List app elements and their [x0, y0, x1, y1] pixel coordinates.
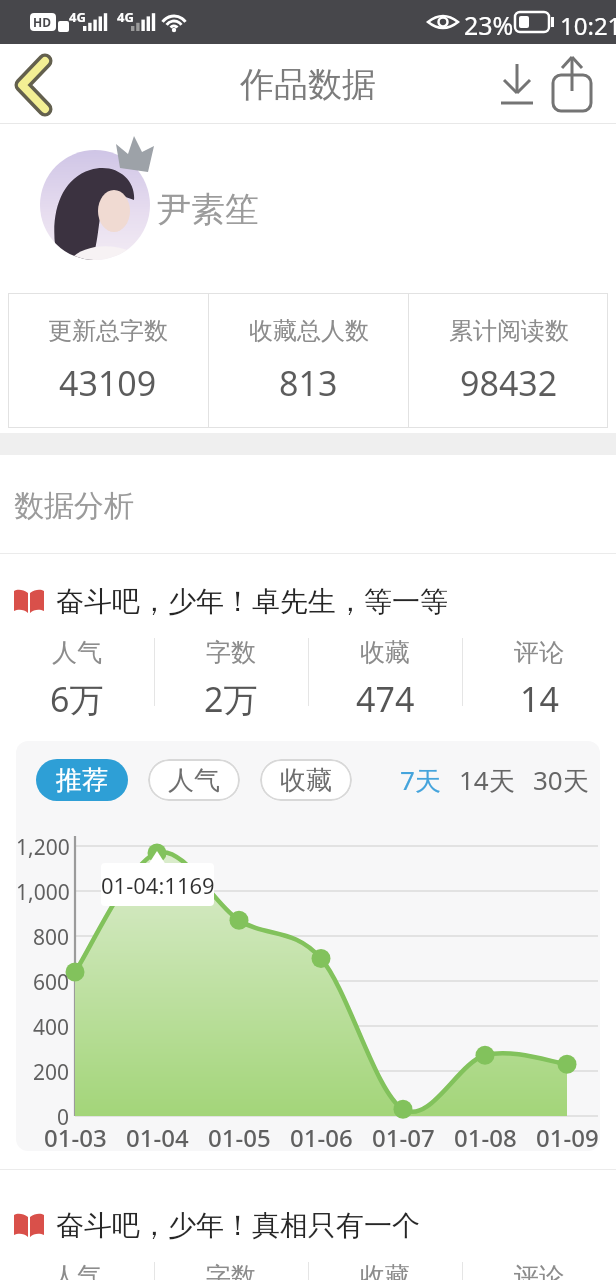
staticText: 400 — [33, 1013, 70, 1042]
staticText: 0 — [57, 1103, 70, 1132]
button[interactable]: 收藏总人数 — [209, 293, 408, 428]
staticText: 813 — [279, 360, 338, 406]
button[interactable]: 更新总字数 — [8, 293, 208, 428]
button[interactable]: 30天 — [533, 762, 589, 798]
staticText: 人气 — [168, 764, 220, 797]
button[interactable]: 奋斗吧，少年！卓先生，等一等 — [14, 584, 616, 619]
staticText: 01-03 — [44, 1121, 107, 1151]
staticText: 10:21 — [560, 9, 616, 42]
button[interactable] — [549, 55, 595, 113]
staticText: 4G — [117, 8, 134, 26]
staticText: 01-04 — [126, 1121, 189, 1151]
staticText: 01-05 — [208, 1121, 271, 1151]
staticText: 更新总字数 — [48, 316, 168, 346]
staticText: 字数 — [206, 1261, 256, 1280]
staticText: 2万 — [204, 676, 258, 722]
staticText: 01-09 — [536, 1121, 599, 1151]
staticText: 6万 — [50, 676, 104, 722]
staticText: 23% — [464, 8, 514, 42]
staticText: 评论 — [514, 1261, 564, 1280]
staticText: 收藏总人数 — [249, 316, 369, 346]
staticText: 474 — [356, 676, 415, 722]
button[interactable]: 累计阅读数 — [409, 293, 608, 428]
staticText: 14 — [520, 676, 559, 722]
staticText: 作品数据 — [240, 63, 376, 106]
staticText: 人气 — [52, 637, 102, 668]
staticText: 评论 — [514, 637, 564, 668]
staticText: 字数 — [206, 637, 256, 668]
staticText: 200 — [33, 1058, 70, 1087]
staticText: 98432 — [460, 360, 558, 406]
staticText: 数据分析 — [14, 487, 134, 525]
staticText: 01-08 — [454, 1121, 517, 1151]
staticText: 奋斗吧，少年！卓先生，等一等 — [56, 584, 448, 619]
staticText: 人气 — [52, 1261, 102, 1280]
staticText: 800 — [33, 923, 70, 952]
button[interactable]: 收藏 — [260, 759, 352, 801]
staticText: 累计阅读数 — [449, 316, 569, 346]
button[interactable]: 7天 — [400, 762, 441, 798]
button[interactable]: 推荐 — [36, 759, 128, 801]
staticText: 推荐 — [56, 764, 108, 797]
staticText: 收藏 — [280, 764, 332, 797]
button[interactable] — [0, 44, 60, 124]
staticText: 尹素笙 — [157, 188, 259, 231]
staticText: 1,000 — [16, 878, 70, 907]
button[interactable]: 人气 — [148, 759, 240, 801]
staticText: 600 — [33, 968, 70, 997]
staticText: 01-04:1169 — [101, 870, 214, 900]
staticText: 收藏 — [360, 1261, 410, 1280]
button[interactable]: 奋斗吧，少年！真相只有一个 — [14, 1208, 616, 1243]
staticText: 1,200 — [16, 833, 70, 862]
staticText: 01-07 — [372, 1121, 435, 1151]
staticText: 收藏 — [360, 637, 410, 668]
staticText: HD — [33, 14, 51, 30]
button[interactable]: 尹素笙 — [0, 124, 616, 293]
staticText: 奋斗吧，少年！真相只有一个 — [56, 1208, 420, 1243]
staticText: 01-06 — [290, 1121, 353, 1151]
staticText: 4G — [69, 8, 86, 26]
button[interactable] — [495, 58, 539, 110]
button[interactable]: 14天 — [459, 762, 515, 798]
staticText: 43109 — [59, 360, 157, 406]
